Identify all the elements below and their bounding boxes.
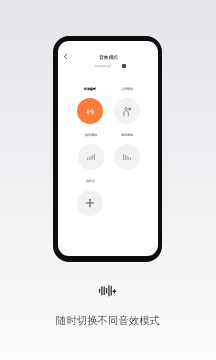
staticText: 随时切换不同音效模式 [56,314,160,327]
button[interactable]: 低音增强 [74,133,108,170]
staticText: 人声模式 [121,87,133,91]
button[interactable]: 如何设置音效? [60,63,158,67]
button[interactable]: 高音增强 [110,133,144,170]
button[interactable]: 自定义 [73,179,107,216]
button[interactable]: Back [60,51,70,61]
staticText: 自定义 [86,179,95,183]
staticText: 如何设置音效? [95,64,112,67]
staticText: 低音增强 [85,133,97,137]
staticText: 标准模式 [84,87,96,91]
button[interactable]: 标准模式 [73,87,107,124]
button[interactable]: 人声模式 [110,87,144,124]
staticText: 音效模式 [99,54,118,60]
staticText: 高音增强 [121,133,133,137]
